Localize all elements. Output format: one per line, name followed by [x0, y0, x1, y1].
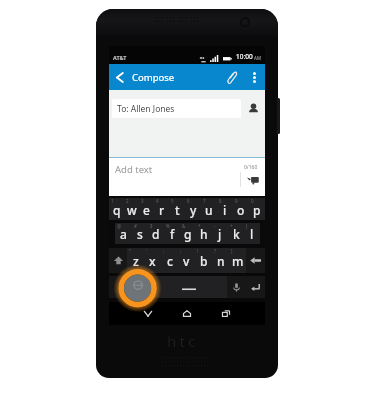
staticText: r: [159, 202, 165, 218]
button[interactable]: ?: [212, 248, 229, 273]
button[interactable]: &: [180, 223, 196, 244]
staticText: w: [127, 202, 137, 218]
staticText: @: [117, 223, 122, 229]
button[interactable]: 7: [201, 198, 217, 220]
staticText: 0/160: [244, 164, 258, 171]
button[interactable]: (: [244, 223, 260, 244]
button[interactable]: Enter: [245, 276, 265, 298]
staticText: ): [231, 248, 233, 254]
button[interactable]: -: [212, 223, 228, 244]
button[interactable]: Recent apps: [213, 307, 239, 320]
staticText: g: [184, 226, 192, 242]
staticText: ?: [214, 248, 216, 254]
button[interactable]: 0: [249, 198, 265, 220]
staticText: 8: [219, 198, 222, 204]
button[interactable]: ,: [133, 276, 150, 298]
staticText: z: [133, 253, 139, 269]
button[interactable]: Home: [174, 307, 200, 320]
staticText: 9: [235, 198, 238, 204]
button[interactable]: ): [229, 248, 246, 273]
staticText: n: [217, 253, 225, 269]
button[interactable]: %: [164, 223, 180, 244]
staticText: s: [137, 226, 143, 242]
staticText: *: [198, 223, 201, 229]
button[interactable]: $: [148, 223, 164, 244]
button[interactable]: Attach: [222, 64, 243, 90]
staticText: %: [166, 223, 170, 229]
button[interactable]: Voice input: [227, 276, 245, 298]
staticText: 10:00: [236, 52, 253, 61]
staticText: h: [200, 226, 208, 242]
staticText: y: [190, 202, 197, 218]
staticText: j: [218, 226, 222, 242]
staticText: &: [182, 223, 186, 229]
staticText: a: [120, 226, 127, 242]
button[interactable]: #: [132, 223, 148, 244]
staticText: l: [250, 226, 254, 242]
button[interactable]: Space: [150, 276, 227, 298]
staticText: htc: [167, 331, 199, 351]
button[interactable]: +: [228, 223, 244, 244]
staticText: 1: [111, 198, 114, 204]
staticText: q: [113, 202, 121, 218]
button[interactable]: ;: [178, 248, 195, 273]
button[interactable]: 5: [169, 198, 185, 220]
staticText: ': [146, 248, 148, 254]
staticText: ;: [180, 248, 182, 254]
button[interactable]: More options: [243, 64, 265, 90]
staticText: :: [163, 248, 165, 254]
button[interactable]: Backspace: [246, 248, 265, 273]
button[interactable]: 9: [233, 198, 249, 220]
staticText: 3: [141, 198, 144, 204]
staticText: Add text: [115, 163, 153, 176]
staticText: !: [197, 248, 199, 254]
staticText: 2: [126, 198, 129, 204]
staticText: u: [205, 202, 213, 218]
button[interactable]: Send message: [245, 174, 261, 186]
staticText: f: [170, 226, 175, 242]
button[interactable]: Back: [109, 64, 131, 90]
button[interactable]: :: [161, 248, 178, 273]
button[interactable]: *: [196, 223, 212, 244]
staticText: v: [183, 253, 190, 269]
button[interactable]: 2: [124, 198, 139, 220]
staticText: d: [152, 226, 160, 242]
staticText: t: [175, 202, 180, 218]
staticText: c: [167, 253, 173, 269]
staticText: (: [246, 223, 248, 229]
button[interactable]: Pick contact: [241, 99, 265, 118]
staticText: x: [149, 253, 156, 269]
staticText: 5: [171, 198, 174, 204]
staticText: b: [200, 253, 208, 269]
button[interactable]: ': [144, 248, 161, 273]
staticText: Compose: [132, 71, 175, 84]
staticText: 0: [251, 198, 254, 204]
staticText: 4: [156, 198, 159, 204]
staticText: #: [134, 223, 137, 229]
staticText: ": [129, 248, 131, 254]
button[interactable]: ": [127, 248, 144, 273]
staticText: o: [237, 202, 245, 218]
button[interactable]: Shift: [109, 248, 127, 273]
button[interactable]: 8: [217, 198, 233, 220]
staticText: m: [232, 253, 244, 269]
button[interactable]: 6: [185, 198, 201, 220]
button[interactable]: To: Allen Jones: [112, 99, 241, 118]
staticText: AT&T: [113, 54, 127, 61]
staticText: To: Allen Jones: [117, 103, 175, 115]
staticText: 6: [187, 198, 190, 204]
staticText: -: [214, 223, 216, 229]
staticText: ,: [140, 280, 144, 296]
staticText: +: [230, 223, 233, 229]
staticText: AM: [254, 55, 261, 61]
staticText: i: [223, 202, 227, 218]
button[interactable]: !: [195, 248, 212, 273]
button[interactable]: 1: [109, 198, 124, 220]
button[interactable]: 3: [139, 198, 154, 220]
staticText: p: [253, 202, 261, 218]
button[interactable]: Hide keyboard: [135, 307, 161, 320]
button[interactable]: @: [115, 223, 132, 244]
staticText: k: [233, 226, 240, 242]
button[interactable]: 4: [154, 198, 169, 220]
button[interactable]: Switch language: [109, 276, 133, 298]
